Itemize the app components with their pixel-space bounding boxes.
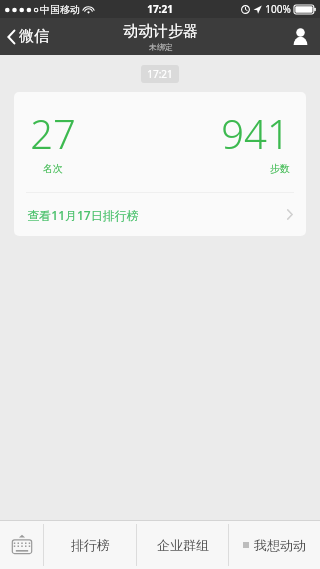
button[interactable]: 我想动动 [229,521,320,569]
staticText: 941 [221,106,290,160]
staticText: 中国移动 [40,3,80,16]
staticText: 企业群组 [157,537,209,553]
staticText: 微信 [19,27,49,46]
button[interactable]: 查看11月17日排行榜 [14,193,306,236]
button[interactable]: Profile [281,18,320,55]
button[interactable]: 企业群组 [137,521,228,569]
staticText: 查看11月17日排行榜 [27,207,139,223]
button[interactable]: Keyboard [0,521,43,569]
button[interactable]: 排行榜 [44,521,136,569]
staticText: 我想动动 [254,537,306,553]
staticText: 17:21 [147,2,173,16]
button[interactable]: 微信 [0,18,59,55]
staticText: 未绑定 [149,42,173,52]
staticText: 动动计步器 [123,22,198,41]
staticText: 17:21 [147,67,173,81]
staticText: 100% [265,2,291,16]
staticText: 步数 [270,162,290,175]
staticText: 排行榜 [71,537,110,553]
staticText: 27 [30,106,76,160]
staticText: 名次 [43,162,63,175]
